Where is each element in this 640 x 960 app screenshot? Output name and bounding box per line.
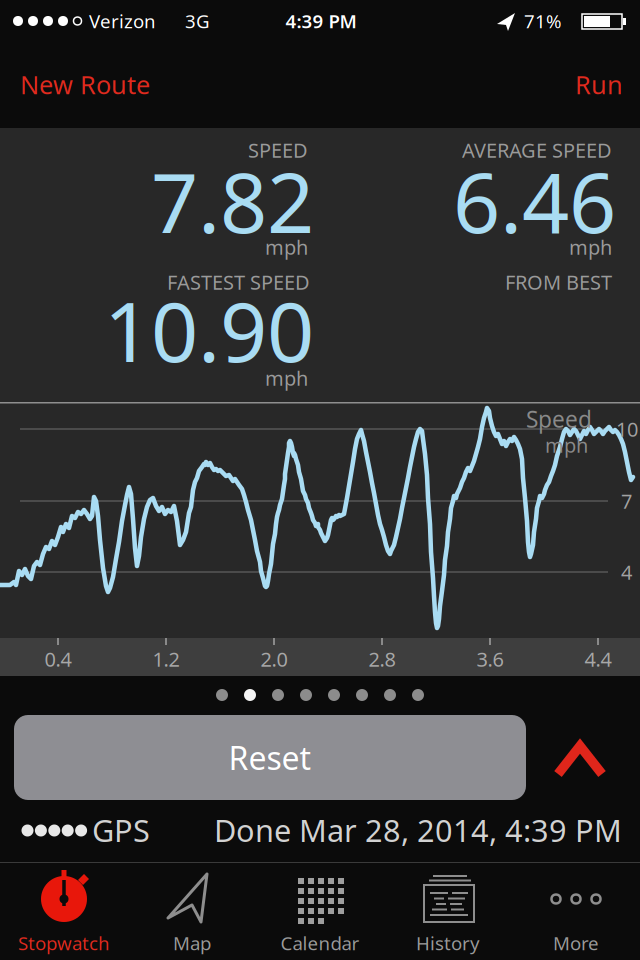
staticText: 71% (524, 9, 562, 33)
staticText: 1.2 (152, 646, 179, 672)
staticText: mph (545, 432, 588, 458)
staticText: 4.4 (584, 646, 611, 672)
staticText: mph (569, 234, 612, 260)
staticText: 2.8 (368, 646, 395, 672)
staticText: 10 (616, 416, 638, 442)
staticText: SPEED (248, 137, 308, 163)
staticText: 7.82 (151, 146, 314, 256)
staticText: 3.6 (476, 646, 503, 672)
staticText: 2.0 (260, 646, 287, 672)
staticText: mph (265, 234, 308, 260)
staticText: 3G (185, 9, 210, 33)
button[interactable]: More (512, 862, 640, 960)
staticText: FASTEST SPEED (167, 269, 310, 295)
button[interactable]: Run (503, 68, 623, 101)
staticText: Run (575, 68, 623, 101)
staticText: Done Mar 28, 2014, 4:39 PM (214, 810, 622, 850)
staticText: Map (173, 931, 211, 955)
staticText: More (553, 931, 599, 955)
staticText: 10.90 (104, 275, 314, 385)
staticText: Calendar (280, 931, 359, 955)
staticText: 7 (621, 488, 632, 514)
staticText: Stopwatch (18, 931, 110, 955)
staticText: 0.4 (44, 646, 71, 672)
staticText: 4:39 PM (285, 9, 356, 33)
button[interactable]: History (384, 862, 512, 960)
staticText: History (416, 931, 480, 955)
staticText: 6.46 (453, 146, 616, 256)
button[interactable]: Expand (554, 741, 606, 779)
button[interactable]: Calendar (256, 862, 384, 960)
staticText: FROM BEST (505, 269, 612, 295)
staticText: Reset (228, 736, 311, 779)
button[interactable]: New Route (20, 68, 220, 101)
staticText: mph (265, 365, 308, 391)
button[interactable]: Map (128, 862, 256, 960)
staticText: Speed (526, 404, 592, 434)
button[interactable]: Stopwatch (0, 862, 128, 960)
staticText: Verizon (89, 9, 156, 33)
staticText: GPS (92, 810, 150, 850)
staticText: 4 (621, 559, 632, 585)
button[interactable]: Reset (14, 715, 526, 800)
staticText: New Route (20, 68, 150, 101)
staticText: AVERAGE SPEED (462, 137, 612, 163)
